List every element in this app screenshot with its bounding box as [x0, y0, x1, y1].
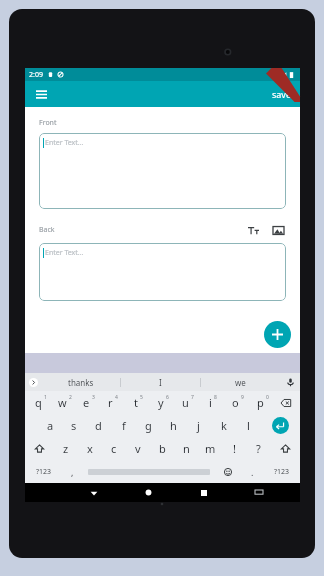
button[interactable]: n [174, 437, 198, 460]
staticText: k [221, 418, 227, 433]
staticText: z [63, 441, 69, 456]
staticText: h [170, 418, 177, 433]
staticText: 0 [266, 394, 269, 401]
button[interactable]: c [102, 437, 126, 460]
button[interactable]: i [198, 391, 223, 414]
staticText: 4 [115, 394, 118, 401]
staticText: g [145, 418, 152, 433]
staticText: 1 [44, 394, 47, 401]
button[interactable]: s [62, 414, 86, 437]
button[interactable]: x [78, 437, 102, 460]
staticText: 5 [140, 394, 143, 401]
button[interactable]: Hide keyboard [66, 483, 121, 502]
button[interactable]: ! [222, 437, 246, 460]
staticText: Back [39, 225, 55, 235]
button[interactable]: Home [121, 483, 176, 502]
staticText: Front [39, 118, 57, 128]
staticText: j [197, 418, 200, 433]
staticText: 2 [69, 394, 72, 401]
staticText: n [183, 441, 190, 456]
staticText: v [135, 441, 141, 456]
staticText: 8 [214, 394, 217, 401]
button[interactable]: Enter [261, 414, 300, 437]
staticText: I [159, 377, 162, 388]
staticText: ? [256, 441, 261, 456]
button[interactable]: Shift [25, 437, 54, 460]
staticText: 3 [92, 394, 95, 401]
button[interactable]: a [38, 414, 62, 437]
staticText: f [122, 418, 126, 433]
staticText: a [47, 418, 54, 433]
staticText: s [71, 418, 77, 433]
button[interactable]: Add card [264, 321, 291, 348]
button[interactable]: Enter Text... [39, 133, 286, 209]
button[interactable]: More suggestions [25, 373, 41, 391]
button[interactable]: Format text [245, 222, 261, 238]
staticText: x [87, 441, 93, 456]
button[interactable]: I [121, 373, 200, 391]
staticText: w [58, 395, 67, 410]
button[interactable]: Backspace [273, 391, 299, 414]
button[interactable]: ?123 [25, 460, 62, 483]
button[interactable]: Emoji [214, 460, 242, 483]
button[interactable]: e [74, 391, 98, 414]
button[interactable]: Open navigation menu [32, 85, 50, 103]
staticText: 2:09 [29, 70, 43, 80]
button[interactable]: z [54, 437, 78, 460]
button[interactable]: Voice input [280, 373, 300, 391]
button[interactable]: Recent apps [176, 483, 231, 502]
button[interactable]: save [264, 83, 300, 105]
button[interactable]: w [50, 391, 74, 414]
button[interactable]: thanks [41, 373, 120, 391]
staticText: d [95, 418, 102, 433]
staticText: b [159, 441, 166, 456]
staticText: . [251, 466, 254, 478]
staticText: l [247, 418, 250, 433]
staticText: i [209, 395, 212, 410]
button[interactable]: p [248, 391, 273, 414]
staticText: thanks [68, 377, 94, 388]
staticText: p [257, 395, 264, 410]
button[interactable]: h [161, 414, 186, 437]
staticText: q [35, 395, 42, 410]
button[interactable]: Space [83, 460, 214, 483]
button[interactable]: g [136, 414, 161, 437]
button[interactable]: u [173, 391, 198, 414]
button[interactable]: v [126, 437, 150, 460]
button[interactable]: we [201, 373, 280, 391]
button[interactable]: t [123, 391, 148, 414]
button[interactable]: k [211, 414, 236, 437]
button[interactable]: j [186, 414, 211, 437]
staticText: c [111, 441, 117, 456]
staticText: m [205, 441, 216, 456]
staticText: o [232, 395, 239, 410]
button[interactable]: Shift [270, 437, 300, 460]
staticText: save [272, 88, 292, 100]
button[interactable]: y [148, 391, 173, 414]
button[interactable]: r [98, 391, 123, 414]
button[interactable]: m [198, 437, 222, 460]
button[interactable]: ?123 [263, 460, 300, 483]
staticText: we [235, 377, 246, 388]
button[interactable]: q [26, 391, 50, 414]
button[interactable]: o [223, 391, 248, 414]
staticText: ?123 [36, 467, 52, 477]
staticText: Enter Text... [45, 138, 84, 148]
staticText: r [108, 395, 113, 410]
staticText: y [158, 395, 164, 410]
button[interactable]: Enter Text... [39, 243, 286, 301]
button[interactable]: f [111, 414, 136, 437]
button[interactable]: ? [246, 437, 270, 460]
button[interactable]: b [150, 437, 174, 460]
staticText: 6 [166, 394, 169, 401]
staticText: , [71, 466, 74, 478]
button[interactable]: Insert image [270, 222, 286, 238]
button[interactable]: Period [242, 460, 263, 483]
button[interactable]: d [86, 414, 111, 437]
staticText: t [134, 395, 138, 410]
staticText: Enter Text... [45, 248, 84, 258]
button[interactable]: l [236, 414, 261, 437]
button[interactable]: Switch keyboard [231, 483, 286, 502]
button[interactable]: Comma [62, 460, 83, 483]
staticText: 7 [191, 394, 194, 401]
